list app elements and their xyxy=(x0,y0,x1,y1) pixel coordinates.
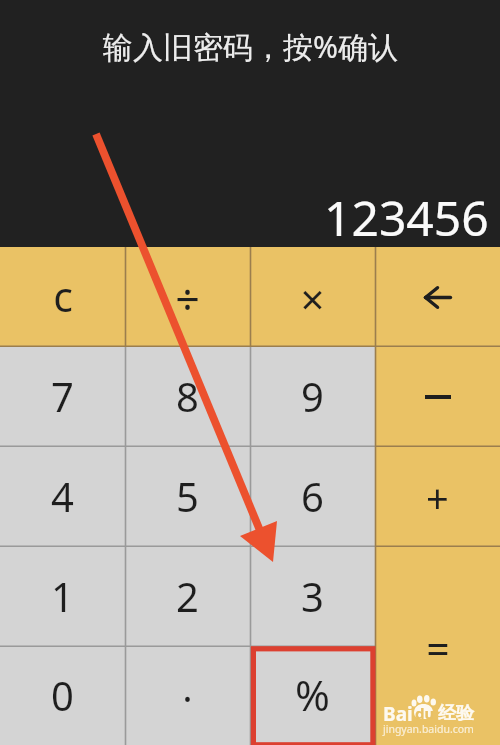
staticText: 1 xyxy=(51,569,74,623)
staticText: 8 xyxy=(176,369,199,423)
staticText: 0 xyxy=(51,668,74,722)
button[interactable]: 1 xyxy=(0,547,125,647)
staticText: jingyan.baidu.com xyxy=(383,722,474,736)
staticText: · xyxy=(182,671,193,724)
staticText: 5 xyxy=(176,469,199,523)
button[interactable]: 0 xyxy=(0,647,125,745)
staticText: du xyxy=(415,703,435,723)
staticText: 4 xyxy=(51,469,74,523)
staticText: 9 xyxy=(301,369,324,423)
staticText: 7 xyxy=(51,369,74,423)
button[interactable]: 5 xyxy=(125,447,250,547)
staticText: 123456 xyxy=(324,185,489,250)
button[interactable]: 6 xyxy=(250,447,375,547)
button[interactable]: 9 xyxy=(250,347,375,447)
staticText: c xyxy=(53,268,73,324)
button[interactable]: ÷ xyxy=(125,247,250,347)
staticText: ÷ xyxy=(175,269,200,328)
button[interactable]: 8 xyxy=(125,347,250,447)
button[interactable]: 3 xyxy=(250,547,375,647)
button[interactable]: 4 xyxy=(0,447,125,547)
button[interactable]: Backspace xyxy=(375,247,500,347)
button[interactable]: % xyxy=(250,647,375,745)
staticText: 输入旧密码，按%确认 xyxy=(103,26,398,67)
staticText: 经验 xyxy=(438,702,474,725)
staticText: Bai xyxy=(383,701,413,727)
button[interactable]: · xyxy=(125,647,250,745)
button[interactable]: = xyxy=(375,547,500,745)
button[interactable]: × xyxy=(250,247,375,347)
staticText: 3 xyxy=(301,569,324,623)
button[interactable]: 7 xyxy=(0,347,125,447)
staticText: = xyxy=(426,620,450,676)
button[interactable]: c xyxy=(0,247,125,347)
button[interactable]: 2 xyxy=(125,547,250,647)
staticText: 6 xyxy=(301,469,324,523)
staticText: 2 xyxy=(176,569,199,623)
staticText: × xyxy=(300,270,325,327)
button[interactable]: Minus xyxy=(375,347,500,447)
staticText: % xyxy=(295,666,330,723)
staticText: + xyxy=(426,470,449,524)
button[interactable]: + xyxy=(375,447,500,547)
